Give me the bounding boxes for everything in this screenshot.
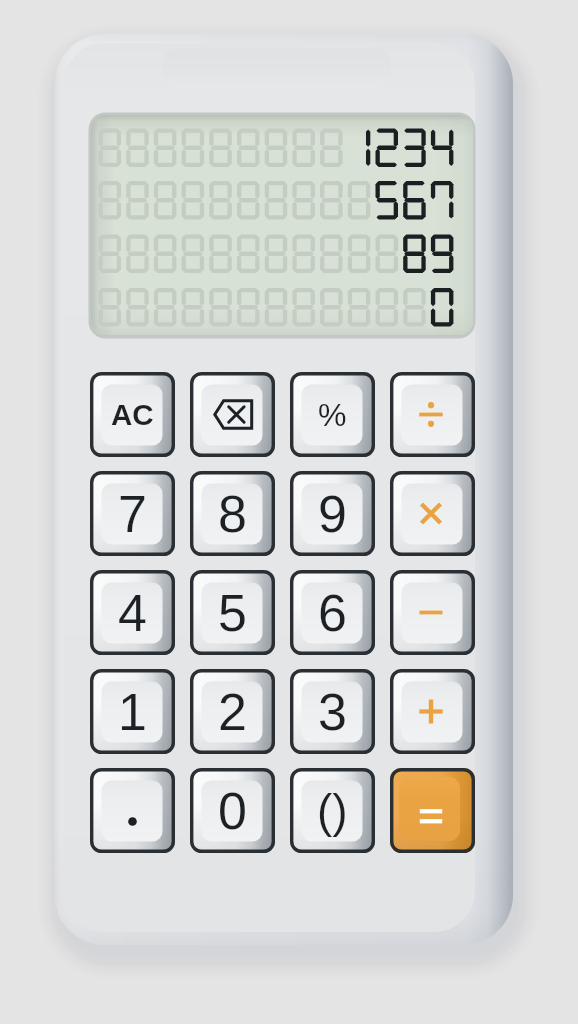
- button[interactable]: 0: [190, 768, 275, 853]
- staticText: 1: [118, 683, 147, 741]
- staticText: 8: [218, 485, 247, 543]
- staticText: %: [318, 397, 347, 433]
- button[interactable]: %: [290, 372, 375, 457]
- button[interactable]: Decimal point: [90, 768, 175, 853]
- button[interactable]: Multiply: [390, 471, 475, 556]
- staticText: 6: [318, 584, 347, 642]
- button[interactable]: Plus: [390, 669, 475, 754]
- button[interactable]: (): [290, 768, 375, 853]
- button[interactable]: 6: [290, 570, 375, 655]
- staticText: 7: [118, 485, 147, 543]
- button[interactable]: 2: [190, 669, 275, 754]
- button[interactable]: 8: [190, 471, 275, 556]
- staticText: 3: [318, 683, 347, 741]
- button[interactable]: 9: [290, 471, 375, 556]
- button[interactable]: AC: [90, 372, 175, 457]
- staticText: 5: [218, 584, 247, 642]
- button[interactable]: 4: [90, 570, 175, 655]
- button[interactable]: Equals: [390, 768, 475, 853]
- button[interactable]: Divide: [390, 372, 475, 457]
- button[interactable]: Backspace: [190, 372, 275, 457]
- button[interactable]: 7: [90, 471, 175, 556]
- staticText: AC: [111, 398, 154, 431]
- button[interactable]: Minus: [390, 570, 475, 655]
- staticText: (): [317, 785, 348, 836]
- button[interactable]: 3: [290, 669, 375, 754]
- button[interactable]: 1: [90, 669, 175, 754]
- button[interactable]: 5: [190, 570, 275, 655]
- staticText: 4: [118, 584, 147, 642]
- staticText: 2: [218, 683, 247, 741]
- staticText: 9: [318, 485, 347, 543]
- staticText: 0: [218, 782, 247, 840]
